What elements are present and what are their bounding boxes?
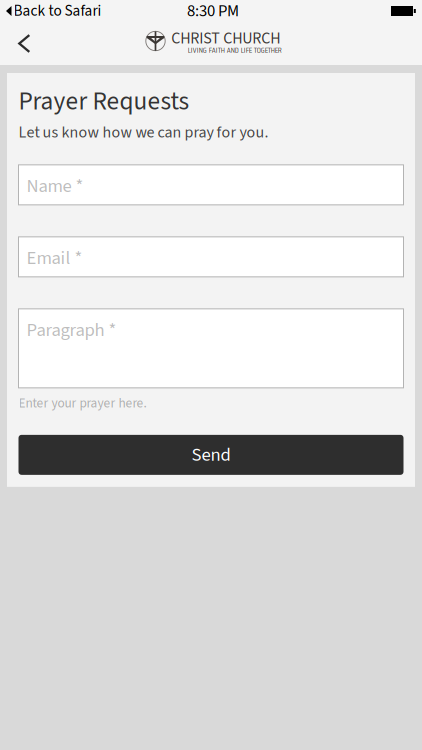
staticText: Prayer Requests <box>18 83 189 120</box>
staticText: Email * <box>26 245 82 271</box>
button[interactable]: Email * <box>18 237 403 277</box>
staticText: CHRIST CHURCH <box>171 27 280 50</box>
staticText: 8:30 PM <box>187 0 239 23</box>
staticText: Enter your prayer here. <box>18 394 146 413</box>
staticText: Paragraph * <box>26 317 116 343</box>
staticText: Back to Safari <box>13 0 101 22</box>
staticText: Name * <box>26 173 83 199</box>
button[interactable]: Send <box>18 435 403 475</box>
button[interactable]: Paragraph * <box>18 309 403 388</box>
staticText: Let us know how we can pray for you. <box>18 121 268 144</box>
button[interactable]: Back <box>0 23 45 64</box>
staticText: LIVING FAITH AND LIFE TOGETHER <box>188 44 282 56</box>
staticText: Send <box>191 442 230 468</box>
button[interactable]: Name * <box>18 165 403 205</box>
